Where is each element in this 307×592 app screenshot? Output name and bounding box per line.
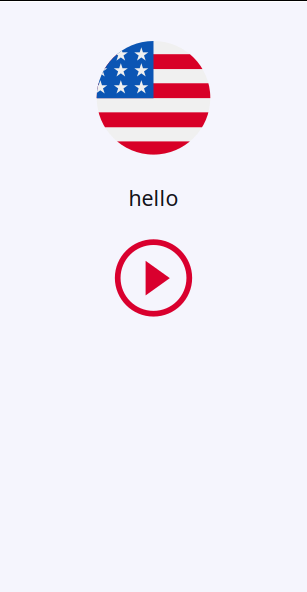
staticText: hello [128, 184, 178, 212]
button[interactable]: Play pronunciation [114, 239, 192, 317]
